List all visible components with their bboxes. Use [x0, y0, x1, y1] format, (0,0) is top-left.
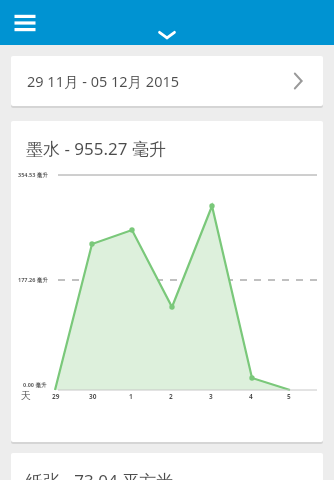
staticText: 3 — [209, 392, 213, 401]
button[interactable]: Menu — [8, 6, 42, 40]
staticText: 29 11月 - 05 12月 2015 — [27, 71, 180, 91]
staticText: 1 — [129, 392, 133, 401]
staticText: 4 — [249, 392, 253, 401]
button[interactable]: 纸张 - 73.04 平方米 — [11, 453, 323, 480]
staticText: 0.00 毫升 — [23, 381, 47, 389]
staticText: 纸张 - 73.04 平方米 — [26, 469, 174, 480]
staticText: 30 — [89, 392, 97, 401]
staticText: 2 — [169, 392, 173, 401]
staticText: 29 — [52, 392, 60, 401]
button[interactable]: Expand — [150, 26, 184, 44]
staticText: 354.53 毫升 — [18, 171, 48, 179]
button[interactable]: 29 11月 - 05 12月 2015 — [11, 56, 323, 106]
staticText: 墨水 - 955.27 毫升 — [26, 137, 166, 160]
staticText: 5 — [287, 392, 291, 401]
staticText: 天 — [21, 389, 31, 402]
staticText: 177.26 毫升 — [18, 276, 48, 284]
button[interactable]: 墨水 - 955.27 毫升 — [11, 121, 323, 442]
